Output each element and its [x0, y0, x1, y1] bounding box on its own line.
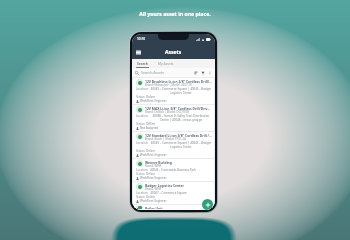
staticText: Status:	[136, 95, 146, 99]
staticText: Status:	[136, 122, 146, 126]
staticText: 12V MAX Li-ion 3/8" Cordless Drill/Drive…	[145, 106, 212, 110]
staticText: Brand: Bosch | Model: PS31-2A	[145, 137, 186, 141]
staticText: Search Assets	[141, 70, 165, 75]
staticText: Location:	[136, 87, 150, 91]
staticText: Location:	[136, 114, 150, 118]
staticText: WorkFleet Engineer	[140, 153, 167, 157]
staticText: 12V Brushless Li-ion 3/8" Cordless Drill…	[145, 79, 212, 83]
staticText: Offline	[146, 122, 156, 126]
button[interactable]: Search	[132, 59, 153, 68]
staticText: Location:	[136, 191, 150, 195]
staticText: Status:	[136, 149, 146, 153]
staticText: Not Assigned	[140, 126, 159, 130]
button[interactable]: 12V Brushless Li-ion 3/8" Cordless Drill…	[133, 78, 214, 104]
staticText: WorkFleet Engineer	[140, 99, 167, 103]
staticText: Brand: WFM	[145, 164, 162, 168]
staticText: Weaver Building	[145, 160, 172, 164]
staticText: My Assets	[158, 61, 174, 65]
button[interactable]: 12V Standard Li-ion 3/8" Cordless Drill …	[133, 132, 214, 158]
staticText: Brand: DeWalt | Model: DCD701B	[145, 110, 190, 114]
staticText: Assets	[165, 49, 182, 56]
button[interactable]: Sort	[194, 71, 198, 75]
staticText: Brand: Milwaukee | Model: 2407-20	[145, 83, 192, 87]
button[interactable]: Boiler Unit	[133, 205, 214, 210]
staticText: Location:	[136, 168, 150, 172]
staticText: WorkFleet Engineer	[140, 176, 167, 180]
staticText: 40045 – Commerce Square | 40045 – Badger…	[150, 87, 212, 95]
staticText: WorkFleet Engineer	[140, 199, 167, 203]
button[interactable]: My Assets	[153, 59, 179, 68]
button[interactable]: Weaver Building	[133, 159, 214, 181]
staticText: 12V Standard Li-ion 3/8" Cordless Drill …	[145, 133, 212, 137]
staticText: 40047 – Commerce Square	[150, 191, 187, 195]
staticText: All yours asset in one place.	[0, 10, 350, 17]
staticText: Online	[146, 149, 155, 153]
button[interactable]: More options	[208, 71, 212, 75]
staticText: Boiler Unit	[145, 206, 163, 209]
button[interactable]: Filter	[201, 71, 205, 75]
button[interactable]: Add asset	[202, 199, 213, 210]
staticText: 10:10	[137, 37, 146, 41]
staticText: Search	[137, 61, 148, 65]
staticText: Online	[146, 172, 155, 176]
staticText: Brand: WFM	[145, 187, 162, 191]
staticText: 40046 – Crossroads Business Park	[150, 168, 196, 172]
staticText: 40045 – Commerce Square | 40045 – Badger…	[150, 141, 212, 149]
staticText: Badger Logistics Center	[145, 183, 184, 187]
staticText: 40088 – Sunset St Valley Tract Distribut…	[150, 114, 212, 122]
button[interactable]: Menu	[136, 50, 141, 55]
staticText: Status:	[136, 172, 146, 176]
staticText: Online	[146, 195, 155, 199]
staticText: Location:	[136, 141, 150, 145]
staticText: Status:	[136, 195, 146, 199]
button[interactable]: 12V MAX Li-ion 3/8" Cordless Drill/Drive…	[133, 105, 214, 131]
staticText: Online	[146, 95, 155, 99]
button[interactable]: Badger Logistics Center	[133, 182, 214, 204]
